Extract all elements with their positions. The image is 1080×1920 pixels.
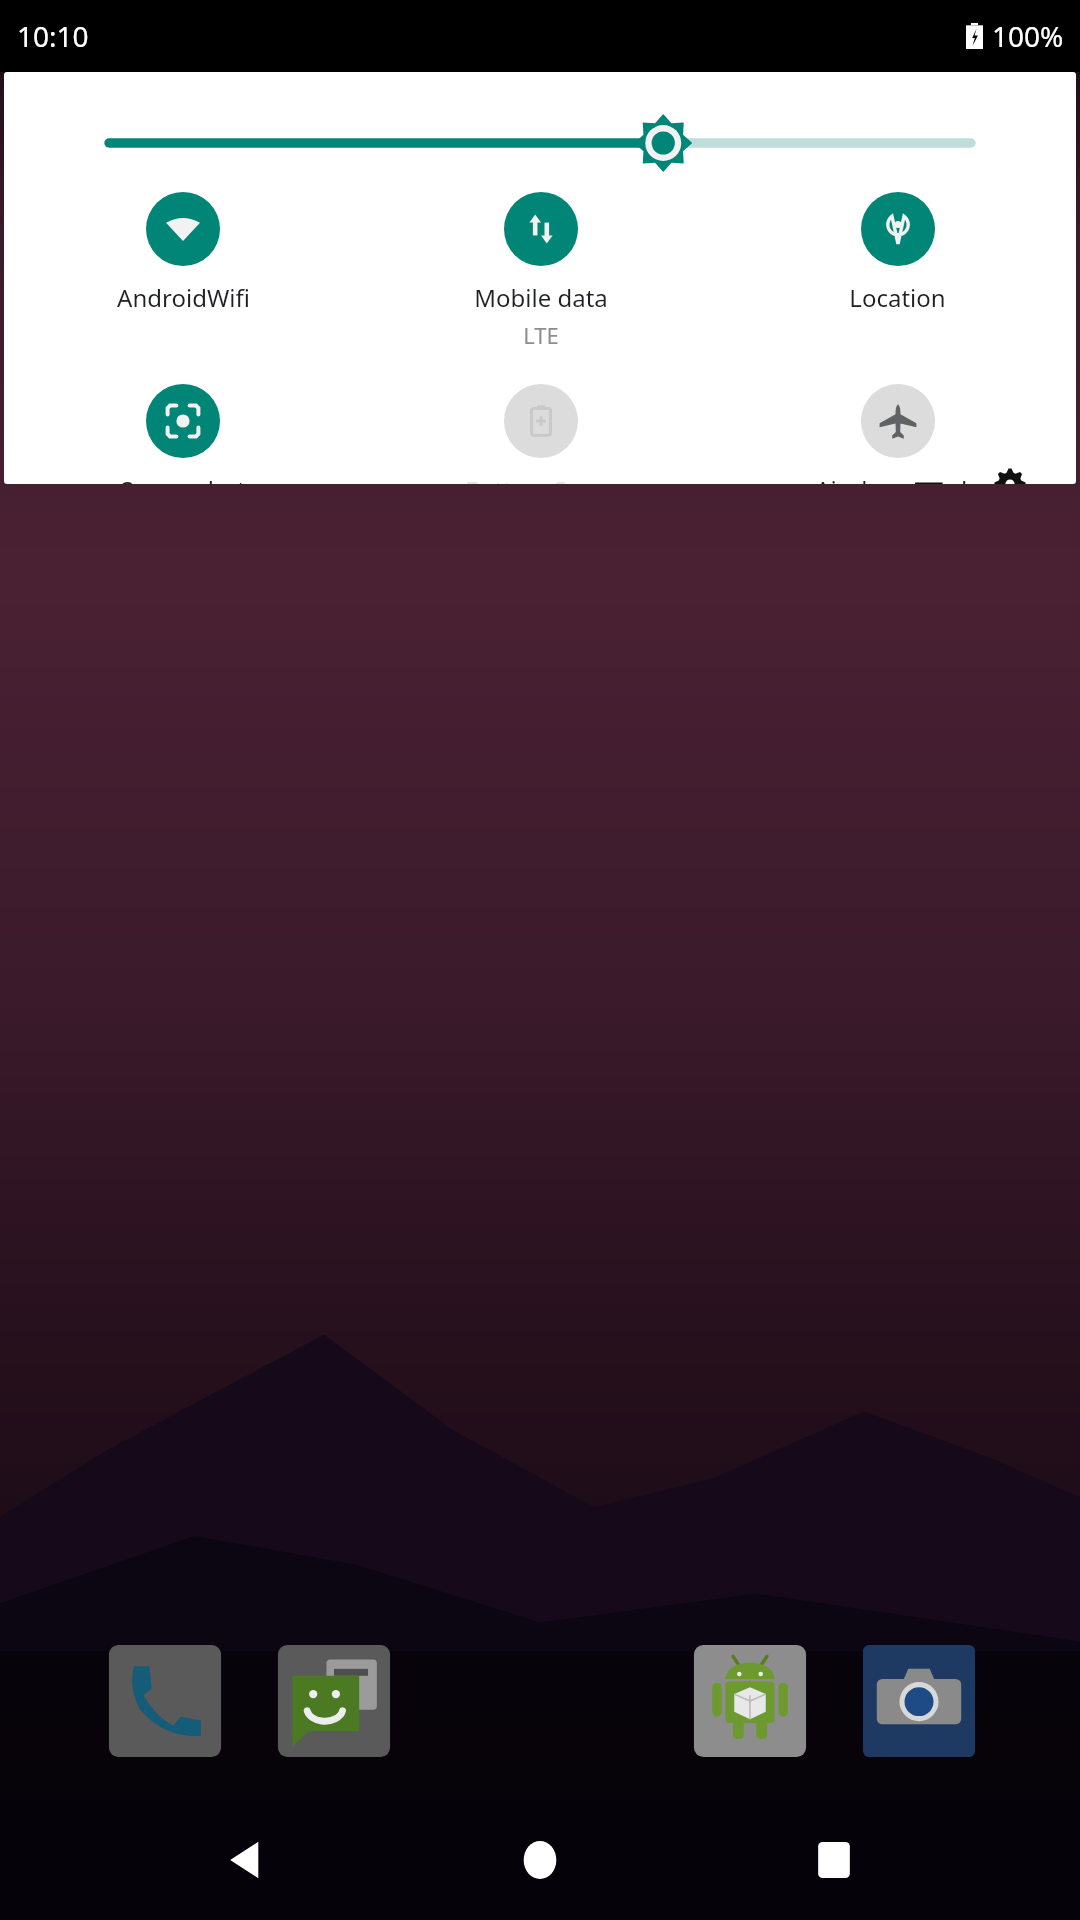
staticText: 100% (992, 17, 1064, 55)
button[interactable]: Messaging (269, 1638, 399, 1764)
button[interactable]: Camera (854, 1638, 984, 1764)
button[interactable]: Battery Saver (362, 384, 719, 484)
button[interactable]: Home (492, 1812, 588, 1908)
staticText: LTE (523, 320, 559, 350)
button[interactable]: AndroidWifi (4, 192, 362, 314)
staticText: 10:10 (17, 17, 89, 55)
button[interactable]: Airplane mode (719, 384, 1076, 484)
staticText: Mobile data (474, 281, 608, 314)
button[interactable]: Back (198, 1812, 294, 1908)
staticText: Battery Saver (465, 473, 616, 484)
staticText: Screenshot (120, 473, 246, 484)
staticText: Airplane mode (815, 473, 981, 484)
button[interactable]: Screenshot (4, 384, 362, 484)
button[interactable]: API Demos (685, 1638, 815, 1764)
button[interactable]: Location (719, 192, 1076, 314)
staticText: AndroidWifi (117, 281, 250, 314)
staticText: Location (849, 281, 946, 314)
button[interactable]: Phone (100, 1638, 230, 1764)
button[interactable]: Brightness (4, 116, 1076, 170)
button[interactable]: Mobile data (362, 192, 719, 350)
button[interactable]: Recent apps (786, 1812, 882, 1908)
